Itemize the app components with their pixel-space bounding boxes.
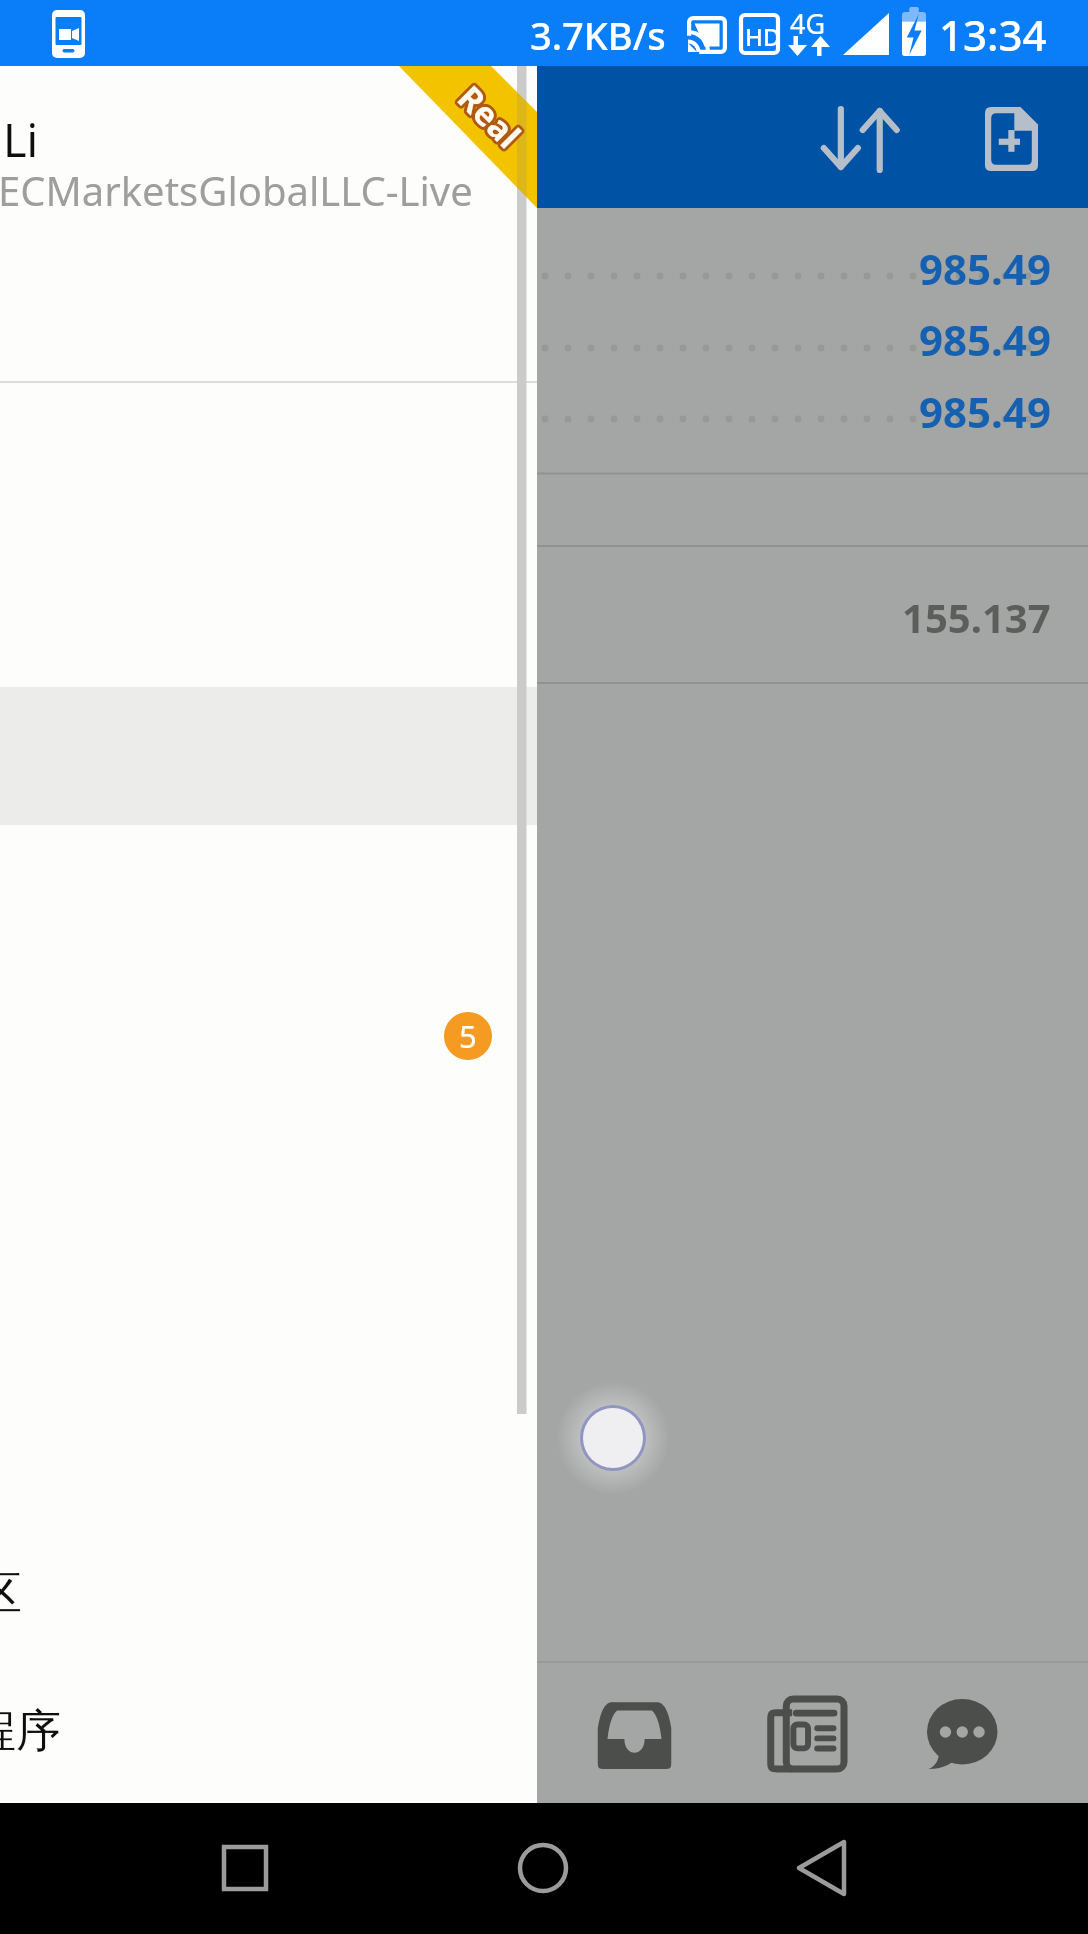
staticText: Real: [448, 75, 530, 157]
staticText: Real: [447, 73, 529, 155]
staticText: Real: [450, 75, 532, 157]
staticText: Real: [446, 74, 528, 156]
button[interactable]: [537, 296, 1088, 384]
staticText: HD: [745, 20, 781, 53]
staticText: 程序: [0, 1703, 61, 1760]
button[interactable]: [0, 1650, 537, 1788]
staticText: Real: [447, 74, 529, 156]
staticText: Real: [447, 78, 529, 160]
staticText: Real: [448, 78, 530, 160]
staticText: Real: [450, 74, 532, 156]
button[interactable]: 5: [444, 1012, 492, 1060]
staticText: ECMarketsGlobalLLC-Live: [0, 163, 473, 217]
staticText: 985.49: [919, 383, 1051, 440]
staticText: Real: [445, 74, 527, 156]
button[interactable]: Sort: [801, 83, 921, 193]
staticText: Real: [446, 73, 528, 155]
staticText: Real: [449, 78, 531, 160]
button[interactable]: [0, 825, 537, 963]
staticText: 区: [0, 1565, 22, 1623]
button[interactable]: [0, 383, 537, 687]
staticText: Real: [446, 76, 528, 158]
staticText: 155.137: [902, 590, 1051, 644]
staticText: Real: [449, 75, 531, 157]
staticText: 985.49: [919, 311, 1051, 368]
button[interactable]: Chat: [906, 1675, 1016, 1793]
staticText: Real: [451, 76, 533, 158]
staticText: Real: [447, 76, 529, 158]
staticText: Real: [449, 72, 531, 154]
button[interactable]: [0, 687, 537, 825]
button[interactable]: Home: [478, 1803, 608, 1934]
button[interactable]: [0, 963, 537, 1101]
button[interactable]: [537, 384, 1088, 472]
staticText: Real: [447, 75, 529, 157]
staticText: Real: [448, 73, 530, 155]
staticText: Real: [450, 76, 532, 158]
staticText: 5: [459, 1015, 477, 1057]
button[interactable]: [537, 548, 1088, 684]
button[interactable]: News: [753, 1675, 863, 1793]
staticText: Real: [446, 75, 528, 157]
staticText: Real: [448, 74, 530, 156]
button[interactable]: [0, 1510, 537, 1648]
staticText: Real: [448, 77, 530, 159]
staticText: Real: [449, 74, 531, 156]
staticText: 985.49: [919, 240, 1051, 297]
staticText: Real: [451, 75, 533, 157]
button[interactable]: Add symbol: [951, 83, 1071, 193]
button[interactable]: Quotes: [580, 1675, 690, 1793]
button[interactable]: Trade: [580, 1404, 646, 1470]
button[interactable]: [537, 208, 1088, 296]
staticText: Real: [446, 77, 528, 159]
staticText: Real: [449, 76, 531, 158]
staticText: 3.7KB/s: [530, 9, 666, 61]
button[interactable]: Recents: [180, 1803, 310, 1934]
staticText: Real: [451, 74, 533, 156]
staticText: Real: [445, 75, 527, 157]
staticText: Real: [449, 77, 531, 159]
staticText: Real: [450, 73, 532, 155]
button[interactable]: [0, 66, 537, 316]
staticText: 4G: [790, 5, 826, 42]
staticText: Real: [448, 72, 530, 154]
staticText: Real: [447, 77, 529, 159]
staticText: Li: [3, 109, 39, 170]
staticText: Real: [449, 73, 531, 155]
staticText: Real: [448, 75, 530, 157]
staticText: Real: [448, 76, 530, 158]
staticText: Real: [450, 77, 532, 159]
staticText: Real: [445, 76, 527, 158]
staticText: 13:34: [939, 6, 1047, 63]
button[interactable]: Back: [778, 1803, 908, 1934]
staticText: Real: [447, 72, 529, 154]
